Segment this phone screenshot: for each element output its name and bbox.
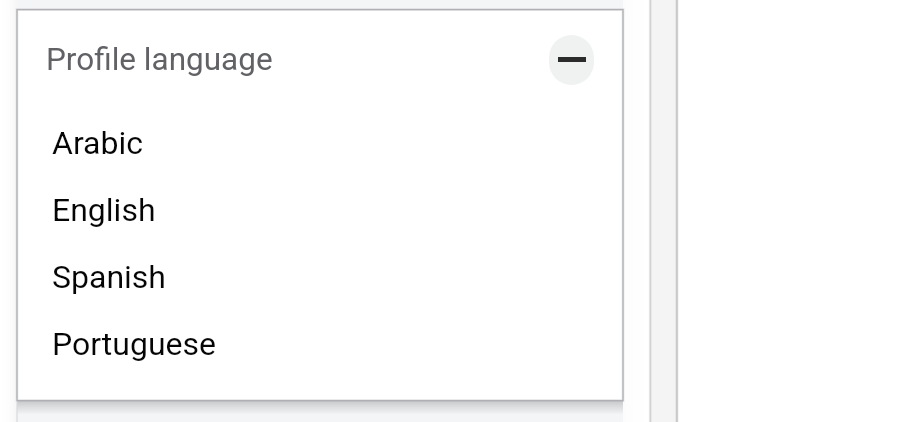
- button[interactable]: Spanish: [17, 243, 623, 310]
- button[interactable]: Collapse Profile language section: [549, 35, 594, 85]
- staticText: Spanish: [52, 258, 166, 296]
- button[interactable]: English: [17, 176, 623, 243]
- button[interactable]: Portuguese: [17, 310, 623, 377]
- button[interactable]: Arabic: [17, 109, 623, 176]
- staticText: Arabic: [52, 124, 143, 162]
- staticText: Portuguese: [52, 325, 217, 363]
- staticText: Profile language: [46, 41, 273, 78]
- staticText: English: [52, 191, 156, 229]
